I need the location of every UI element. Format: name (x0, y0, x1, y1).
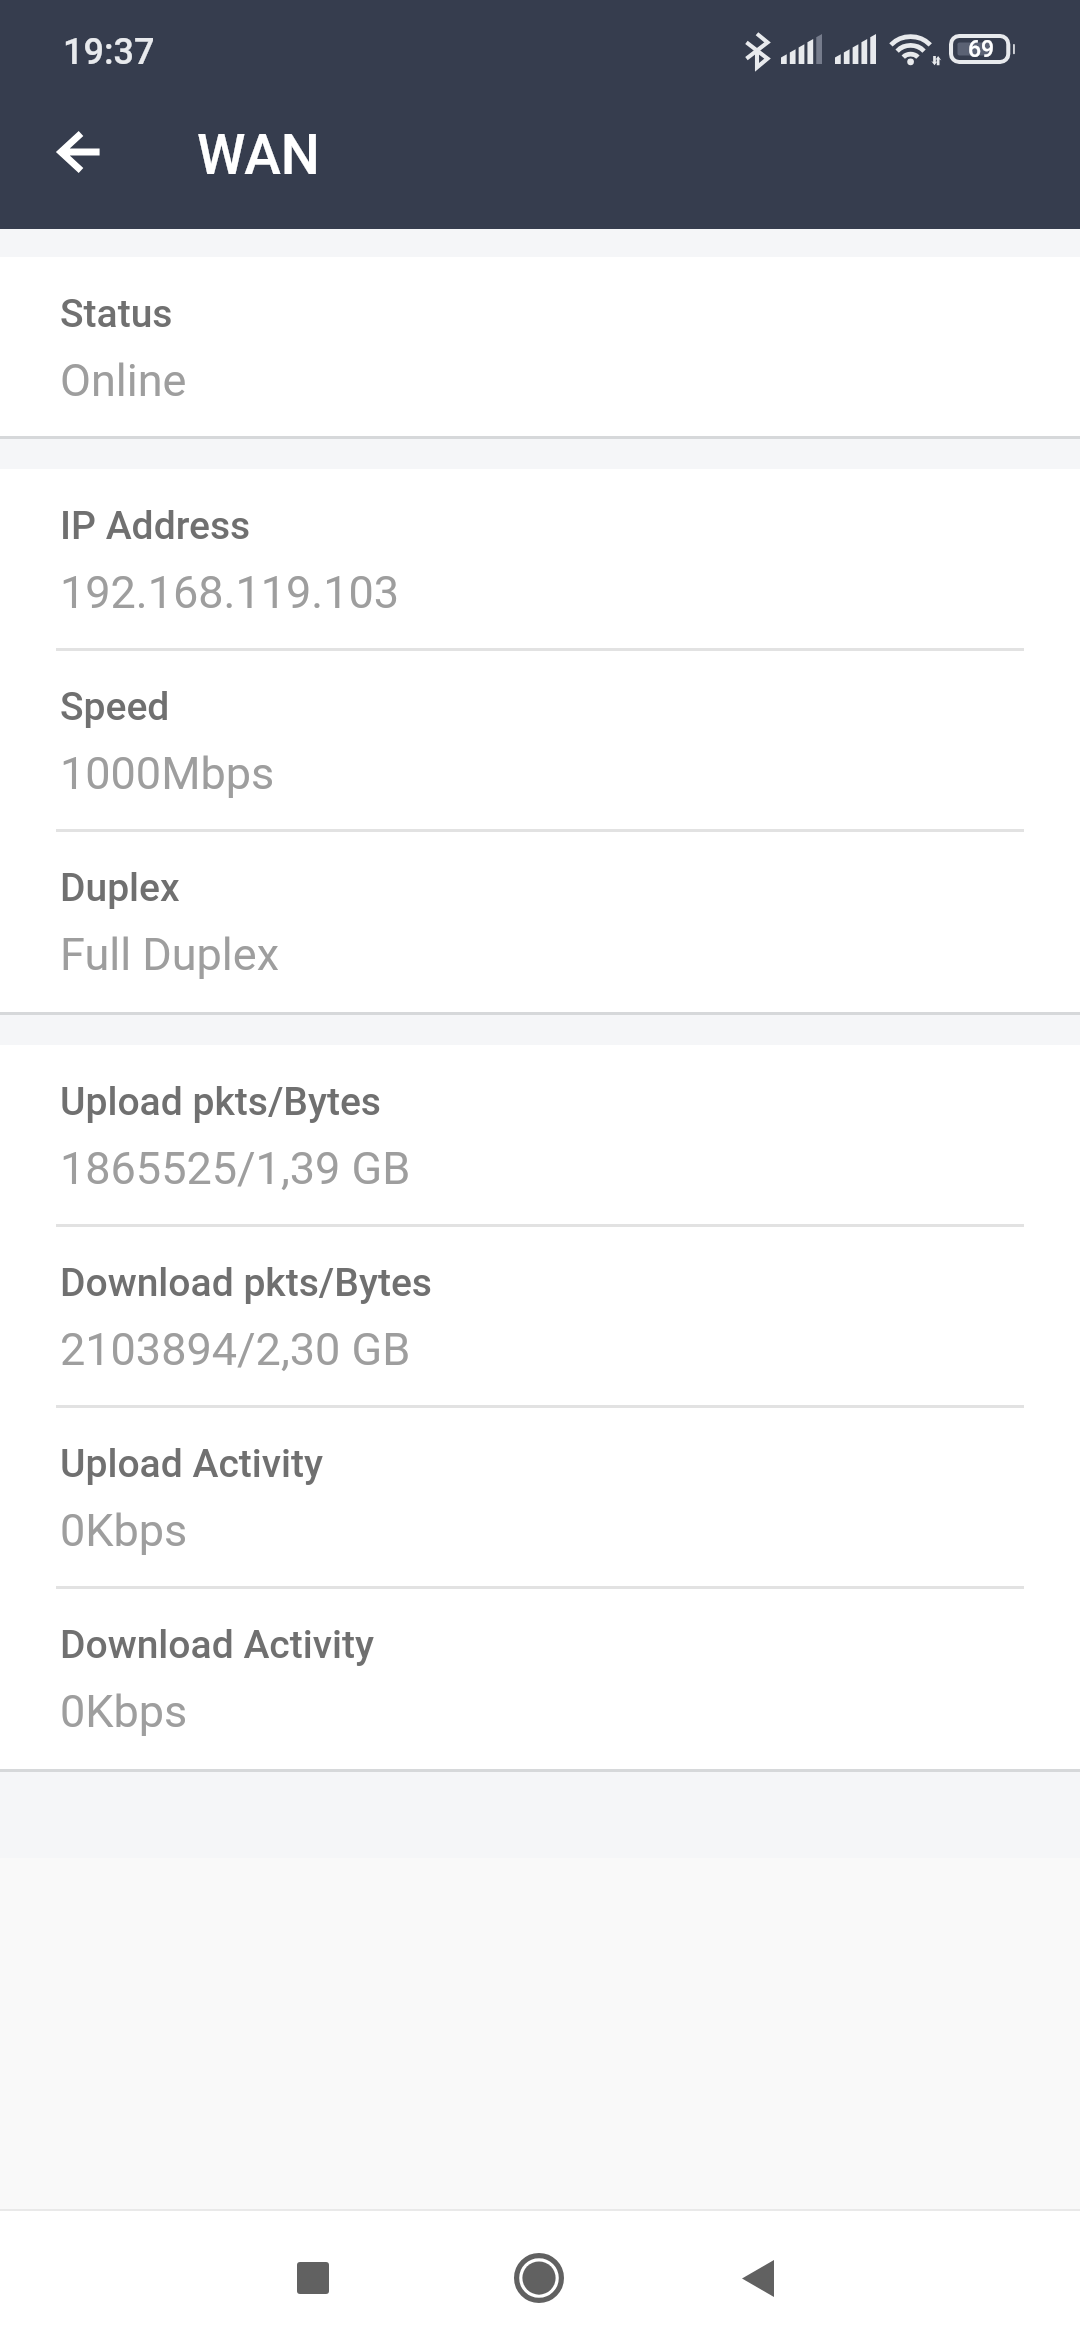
button[interactable]: Download Activity (0, 1588, 1080, 1769)
button[interactable]: Download pkts/Bytes (0, 1226, 1080, 1407)
staticText: WAN (197, 123, 320, 187)
staticText: 19:37 (63, 31, 155, 73)
staticText: Upload pkts/Bytes (60, 1079, 382, 1125)
staticText: 69 (968, 36, 995, 63)
staticText: Online (60, 354, 187, 407)
staticText: 1865525/1,39 GB (60, 1142, 411, 1195)
button[interactable]: Duplex (0, 831, 1080, 1012)
staticText: Upload Activity (60, 1441, 324, 1487)
staticText: 192.168.119.103 (60, 566, 400, 619)
staticText: 0Kbps (60, 1685, 188, 1738)
button[interactable]: Home (479, 2218, 599, 2338)
staticText: 0Kbps (60, 1504, 188, 1557)
staticText: IP Address (60, 503, 251, 549)
button[interactable]: Upload Activity (0, 1407, 1080, 1588)
staticText: 1000Mbps (60, 747, 275, 800)
staticText: 2103894/2,30 GB (60, 1323, 411, 1376)
button[interactable]: IP Address (0, 469, 1080, 650)
staticText: Speed (60, 684, 170, 730)
button[interactable]: Recent apps (253, 2218, 373, 2338)
staticText: Download pkts/Bytes (60, 1260, 432, 1306)
staticText: Duplex (60, 865, 180, 911)
button[interactable]: Navigate up (31, 102, 131, 202)
staticText: Full Duplex (60, 928, 279, 981)
staticText: Status (60, 291, 173, 337)
staticText: Download Activity (60, 1622, 375, 1668)
button[interactable]: Speed (0, 650, 1080, 831)
button[interactable]: Upload pkts/Bytes (0, 1045, 1080, 1226)
button[interactable]: Status (0, 257, 1080, 436)
button[interactable]: Back (698, 2218, 818, 2338)
